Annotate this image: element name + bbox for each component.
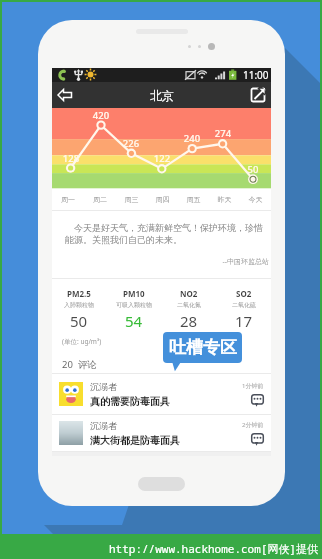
staticText: (单位: ug/m³) — [62, 337, 102, 346]
staticText: 二氧化硫 — [232, 301, 256, 309]
staticText: 可吸入颗粒物 — [116, 301, 152, 309]
staticText: 226 — [119, 137, 143, 150]
staticText: 昨天 — [209, 195, 240, 204]
button[interactable]: 吐槽专区 — [163, 332, 242, 363]
staticText: 128 — [59, 152, 83, 165]
staticText: 二氧化氮 — [177, 301, 201, 309]
staticText: 20 评论 — [62, 358, 97, 371]
staticText: 420 — [89, 109, 113, 122]
staticText: 240 — [180, 132, 204, 145]
staticText: http://www.hackhome.com[网侠]提供 — [109, 541, 318, 556]
staticText: 沉溺者 — [90, 420, 117, 431]
staticText: 28 — [180, 311, 198, 331]
staticText: 吐槽专区 — [169, 337, 237, 358]
button[interactable]: Back — [52, 82, 78, 108]
button[interactable]: Reply — [251, 433, 264, 446]
staticText: 50 — [70, 311, 88, 331]
staticText: --中国环监总站 — [65, 257, 269, 267]
staticText: 满大街都是防毒面具 — [90, 434, 180, 447]
button[interactable]: 沉溺者 — [52, 415, 271, 451]
staticText: 122 — [150, 152, 174, 165]
staticText: PM10 — [123, 288, 145, 299]
staticText: 沉溺者 — [90, 381, 117, 392]
staticText: 1分钟前 — [242, 382, 264, 390]
staticText: 2分钟前 — [242, 421, 264, 429]
staticText: PM2.5 — [67, 288, 91, 299]
staticText: 北京 — [150, 88, 174, 103]
staticText: 11:00 — [243, 68, 269, 82]
staticText: 274 — [211, 127, 235, 140]
staticText: 真的需要防毒面具 — [90, 395, 170, 408]
staticText: 今天是好天气，充满新鲜空气！保护环境，珍惜 能源。关照我们自己的未来。 — [65, 221, 263, 245]
staticText: 54 — [125, 311, 143, 331]
staticText: 入肺颗粒物 — [64, 301, 94, 309]
staticText: 今天 — [240, 195, 271, 204]
staticText: 周二 — [84, 195, 116, 204]
staticText: 周三 — [116, 195, 147, 204]
staticText: 周五 — [178, 195, 209, 204]
button[interactable]: Reply — [251, 394, 264, 407]
staticText: 50 — [241, 163, 265, 176]
staticText: 周四 — [147, 195, 178, 204]
button[interactable]: 沉溺者 — [52, 374, 271, 414]
staticText: 周一 — [52, 195, 84, 204]
staticText: SO2 — [236, 288, 252, 299]
staticText: NO2 — [180, 288, 198, 299]
button[interactable]: Open in browser — [245, 82, 271, 108]
staticText: 17 — [235, 311, 253, 331]
